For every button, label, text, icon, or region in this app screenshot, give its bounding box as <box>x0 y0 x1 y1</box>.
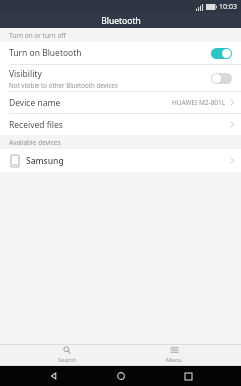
button[interactable]: On <box>211 48 232 59</box>
staticText: Turn on Bluetooth <box>9 47 82 59</box>
staticText: Samsung <box>26 155 230 167</box>
staticText: Not visible to other Bluetooth devices <box>9 81 118 89</box>
staticText: Bluetooth <box>101 15 141 27</box>
button[interactable]: Turn on Bluetooth <box>0 42 241 64</box>
button[interactable]: Search <box>45 345 89 365</box>
button[interactable]: Recents <box>174 366 202 386</box>
button[interactable]: Off <box>211 73 232 84</box>
staticText: 10:03 <box>219 2 237 12</box>
staticText: Received files <box>9 119 230 131</box>
staticText: Visibility <box>9 68 42 80</box>
staticText: Available devices <box>9 138 61 147</box>
button[interactable]: Visibility <box>0 65 241 91</box>
other: Menu <box>170 346 179 354</box>
button[interactable]: Menu <box>152 345 196 365</box>
staticText: Turn on or turn off <box>9 31 66 40</box>
staticText: HUAWEI M2-801L <box>172 98 226 107</box>
button[interactable]: Device name <box>0 92 241 113</box>
staticText: Device name <box>9 97 172 109</box>
button[interactable]: Back <box>40 366 68 386</box>
button[interactable]: Home <box>107 366 135 386</box>
staticText: Menu <box>166 356 182 364</box>
other: Search <box>63 346 71 354</box>
button[interactable]: Received files <box>0 114 241 135</box>
button[interactable]: Samsung <box>0 149 241 172</box>
staticText: Search <box>58 356 77 364</box>
